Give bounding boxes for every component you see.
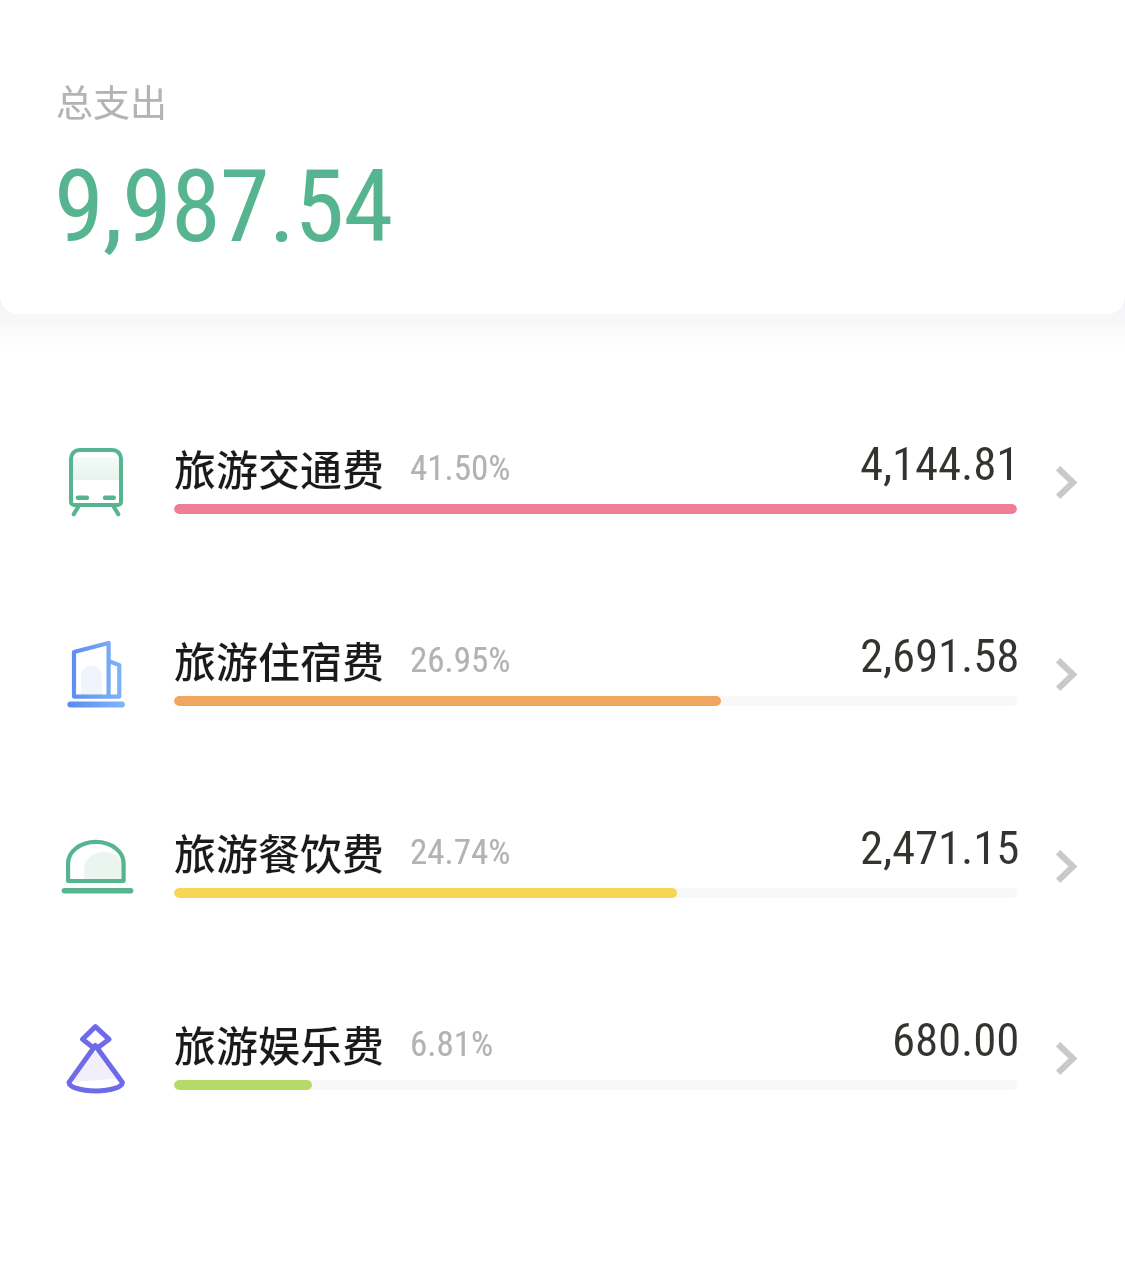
other: Details: [1052, 656, 1080, 696]
staticText: 2,471.15: [860, 820, 1020, 875]
button[interactable]: Transport: [0, 420, 1125, 530]
other: Details: [1052, 848, 1080, 888]
other: Entertainment: [61, 1024, 131, 1094]
staticText: 2,691.58: [860, 628, 1020, 683]
button[interactable]: Entertainment: [0, 996, 1125, 1106]
staticText: 旅游娱乐费: [174, 1013, 385, 1074]
staticText: 旅游餐饮费: [174, 821, 385, 882]
other: Details: [1052, 1040, 1080, 1080]
staticText: 24.74%: [410, 832, 511, 873]
button[interactable]: Hotel: [0, 612, 1125, 722]
staticText: 旅游交通费: [174, 437, 385, 498]
other: Dining: [61, 832, 131, 902]
staticText: 6.81%: [410, 1024, 494, 1065]
staticText: 680.00: [892, 1012, 1020, 1067]
staticText: 41.50%: [410, 448, 511, 489]
staticText: 9,987.54: [54, 147, 393, 265]
staticText: 4,144.81: [860, 436, 1020, 491]
other: Transport: [61, 448, 131, 518]
staticText: 总支出: [56, 74, 167, 128]
other: Details: [1052, 464, 1080, 504]
staticText: 26.95%: [410, 640, 511, 681]
button[interactable]: Dining: [0, 804, 1125, 914]
other: Hotel: [61, 640, 131, 710]
staticText: 旅游住宿费: [174, 629, 385, 690]
